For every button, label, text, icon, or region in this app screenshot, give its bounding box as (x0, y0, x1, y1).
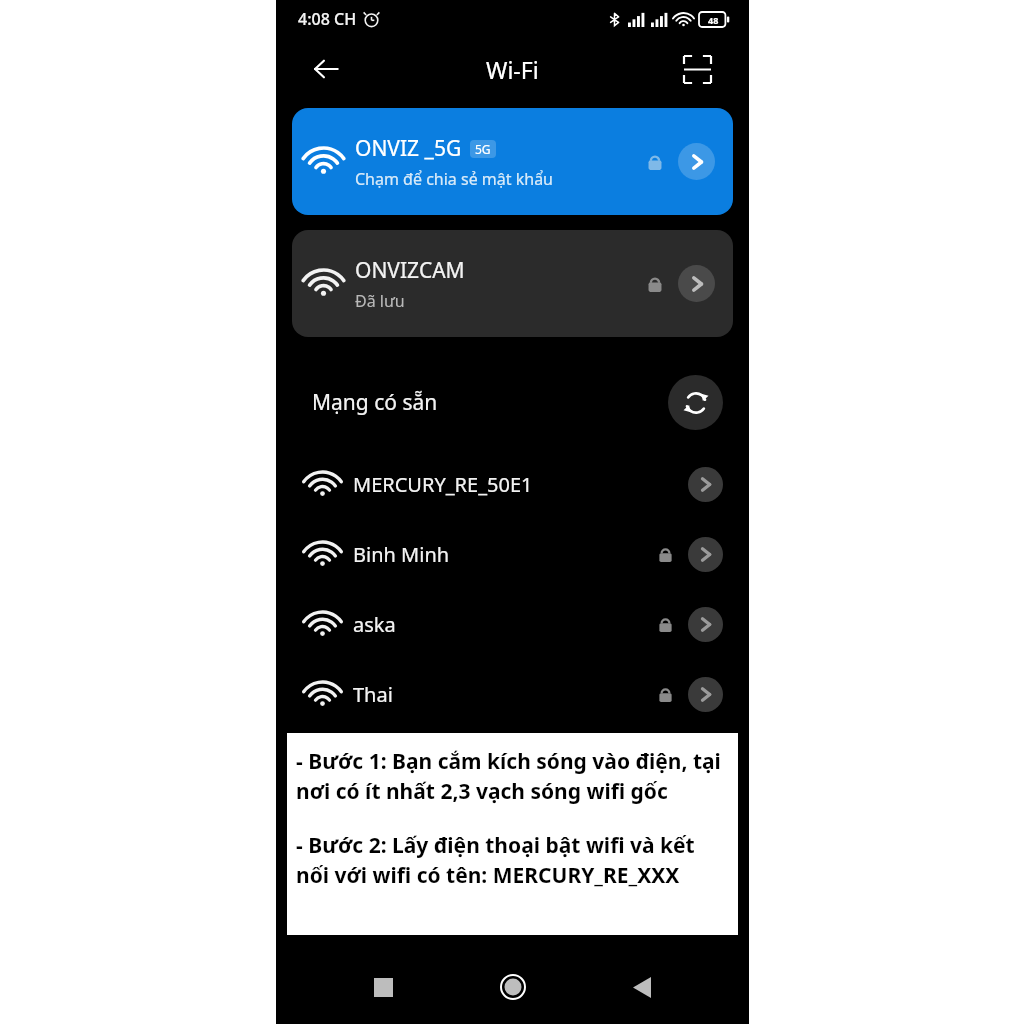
button[interactable]: aska (276, 589, 749, 659)
button[interactable]: Back (619, 964, 665, 1010)
staticText: Mạng có sẵn (312, 388, 668, 417)
staticText: ONVIZCAM (355, 256, 465, 285)
button[interactable]: Network details (688, 607, 723, 642)
staticText: - Bước 1: Bạn cắm kích sóng vào điện, tạ… (296, 747, 732, 805)
staticText: 5G (475, 141, 491, 157)
staticText: Binh Minh (353, 541, 657, 568)
staticText: 48 (708, 14, 719, 26)
staticText: Đã lưu (355, 290, 405, 312)
button[interactable]: Network details (678, 265, 715, 302)
staticText: aska (353, 611, 657, 638)
button[interactable]: Network details (688, 677, 723, 712)
staticText: Thai (353, 681, 657, 708)
staticText: Chạm để chia sẻ mật khẩu (355, 168, 554, 190)
button[interactable]: MERCURY_RE_50E1 (276, 449, 749, 519)
button[interactable]: Home (490, 964, 536, 1010)
button[interactable]: Network details (678, 143, 715, 180)
button[interactable]: Scan QR code (675, 47, 719, 91)
button[interactable]: ONVIZCAM (292, 230, 733, 337)
button[interactable]: Binh Minh (276, 519, 749, 589)
button[interactable]: Refresh (668, 375, 723, 430)
button[interactable]: ONVIZ _5G (292, 108, 733, 215)
button[interactable]: Back (304, 47, 348, 91)
button[interactable]: Network details (688, 467, 723, 502)
button[interactable]: Thai (276, 659, 749, 729)
staticText: MERCURY_RE_50E1 (353, 471, 657, 498)
button[interactable]: Recent apps (360, 964, 406, 1010)
staticText: - Bước 2: Lấy điện thoại bật wifi và kết… (296, 831, 732, 889)
staticText: 4:08 CH (298, 8, 357, 30)
staticText: ONVIZ _5G (355, 134, 462, 163)
button[interactable]: Network details (688, 537, 723, 572)
staticText: Wi-Fi (486, 54, 539, 85)
